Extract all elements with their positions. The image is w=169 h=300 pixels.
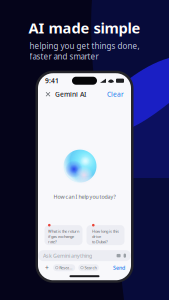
button[interactable]: Research <box>53 264 75 271</box>
staticText: 9:41 <box>45 76 59 85</box>
staticText: + <box>45 263 49 272</box>
staticText: Search <box>84 265 96 270</box>
staticText: Send <box>113 264 125 271</box>
button[interactable]: Search <box>78 264 99 271</box>
staticText: AI made simple <box>28 18 140 37</box>
staticText: Ask Gemini anything <box>43 252 92 259</box>
staticText: How can I help you today? <box>53 193 115 200</box>
button[interactable]: Send <box>113 264 125 271</box>
staticText: Research <box>59 265 73 270</box>
button[interactable]: Add image <box>117 254 121 257</box>
staticText: What is the return if gas exchange rate? <box>48 228 79 244</box>
staticText: Gemini AI <box>55 90 86 99</box>
button[interactable]: What is the return if gas exchange rate? <box>44 225 82 245</box>
staticText: helping you get things done, faster and … <box>29 40 139 62</box>
button[interactable]: Voice input <box>121 253 126 258</box>
button[interactable]: How long is this drive to Dubai? <box>86 225 124 245</box>
button[interactable]: Clear <box>106 89 125 100</box>
button[interactable]: Add <box>44 265 50 271</box>
button[interactable]: Close <box>44 90 52 98</box>
staticText: How long is this drive to Dubai? <box>92 228 119 244</box>
staticText: Clear <box>107 90 124 99</box>
